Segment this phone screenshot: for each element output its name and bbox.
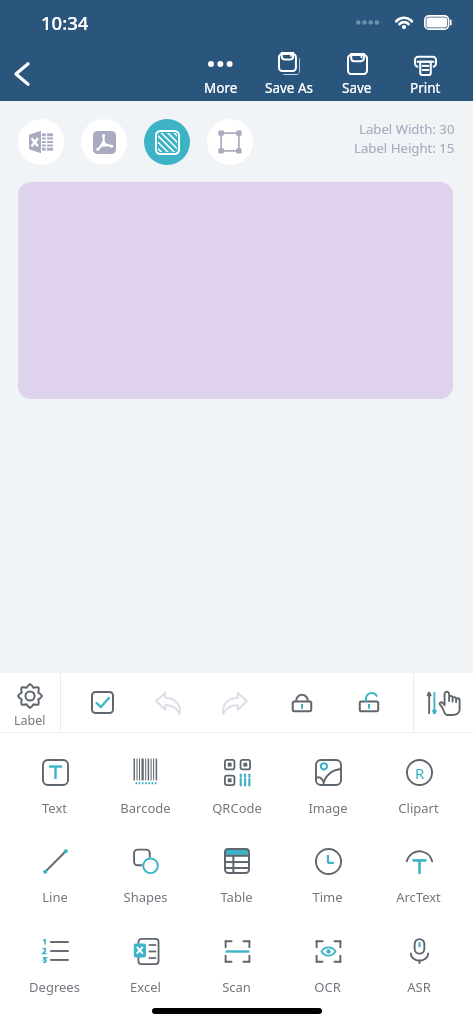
staticText: Save As (265, 79, 314, 97)
staticText: Image (308, 799, 348, 817)
staticText: Label Height: 15 (354, 139, 455, 157)
staticText: Label (14, 712, 46, 729)
button[interactable]: Export to PDF (81, 119, 127, 165)
staticText: Barcode (120, 799, 171, 817)
staticText: Save (342, 79, 372, 97)
staticText: ASR (407, 978, 431, 996)
staticText: Scan (222, 978, 251, 996)
button[interactable]: OCR (282, 914, 373, 1004)
button[interactable]: Save (323, 46, 391, 101)
button[interactable]: Undo (135, 673, 201, 732)
staticText: Excel (130, 978, 161, 996)
button[interactable]: Degrees (9, 914, 100, 1004)
staticText: Time (312, 888, 343, 906)
staticText: Line (42, 888, 68, 906)
button[interactable]: Label (0, 673, 60, 732)
button[interactable]: Scan (191, 914, 282, 1004)
button[interactable]: Excel (100, 914, 191, 1004)
staticText: Table (220, 888, 253, 906)
staticText: Degrees (29, 978, 80, 996)
button[interactable]: ArcText (373, 824, 464, 914)
staticText: Text (42, 799, 67, 817)
staticText: Clipart (398, 799, 439, 817)
button[interactable]: Line (9, 824, 100, 914)
button[interactable]: Save As (255, 46, 323, 101)
button[interactable]: Back (2, 54, 42, 94)
staticText: OCR (314, 978, 341, 996)
button[interactable]: Frame (207, 119, 253, 165)
staticText: ArcText (396, 888, 441, 906)
button[interactable]: Table (191, 824, 282, 914)
button[interactable]: ASR (373, 914, 464, 1004)
button[interactable]: Print (391, 46, 459, 101)
button[interactable]: QRCode (191, 733, 282, 824)
button[interactable]: Barcode (100, 733, 191, 824)
staticText: 10:34 (41, 10, 89, 35)
staticText: Label Width: 30 (359, 120, 455, 138)
button[interactable]: Shapes (100, 824, 191, 914)
staticText: R (415, 763, 425, 783)
button[interactable]: Image (282, 733, 373, 824)
button[interactable]: R (373, 733, 464, 824)
button[interactable]: More (187, 46, 255, 101)
button[interactable]: Unlock (335, 673, 402, 732)
staticText: QRCode (212, 799, 262, 817)
staticText: More (204, 79, 238, 97)
button[interactable]: Redo (201, 673, 268, 732)
staticText: Print (410, 79, 441, 97)
staticText: Shapes (123, 888, 168, 906)
button[interactable]: Export to Excel (18, 119, 64, 165)
button[interactable]: Background (144, 119, 190, 165)
button[interactable]: Time (282, 824, 373, 914)
button[interactable]: Lock (268, 673, 335, 732)
button[interactable]: Text (9, 733, 100, 824)
button[interactable]: Select all (69, 673, 135, 732)
button[interactable]: Move (414, 673, 473, 732)
